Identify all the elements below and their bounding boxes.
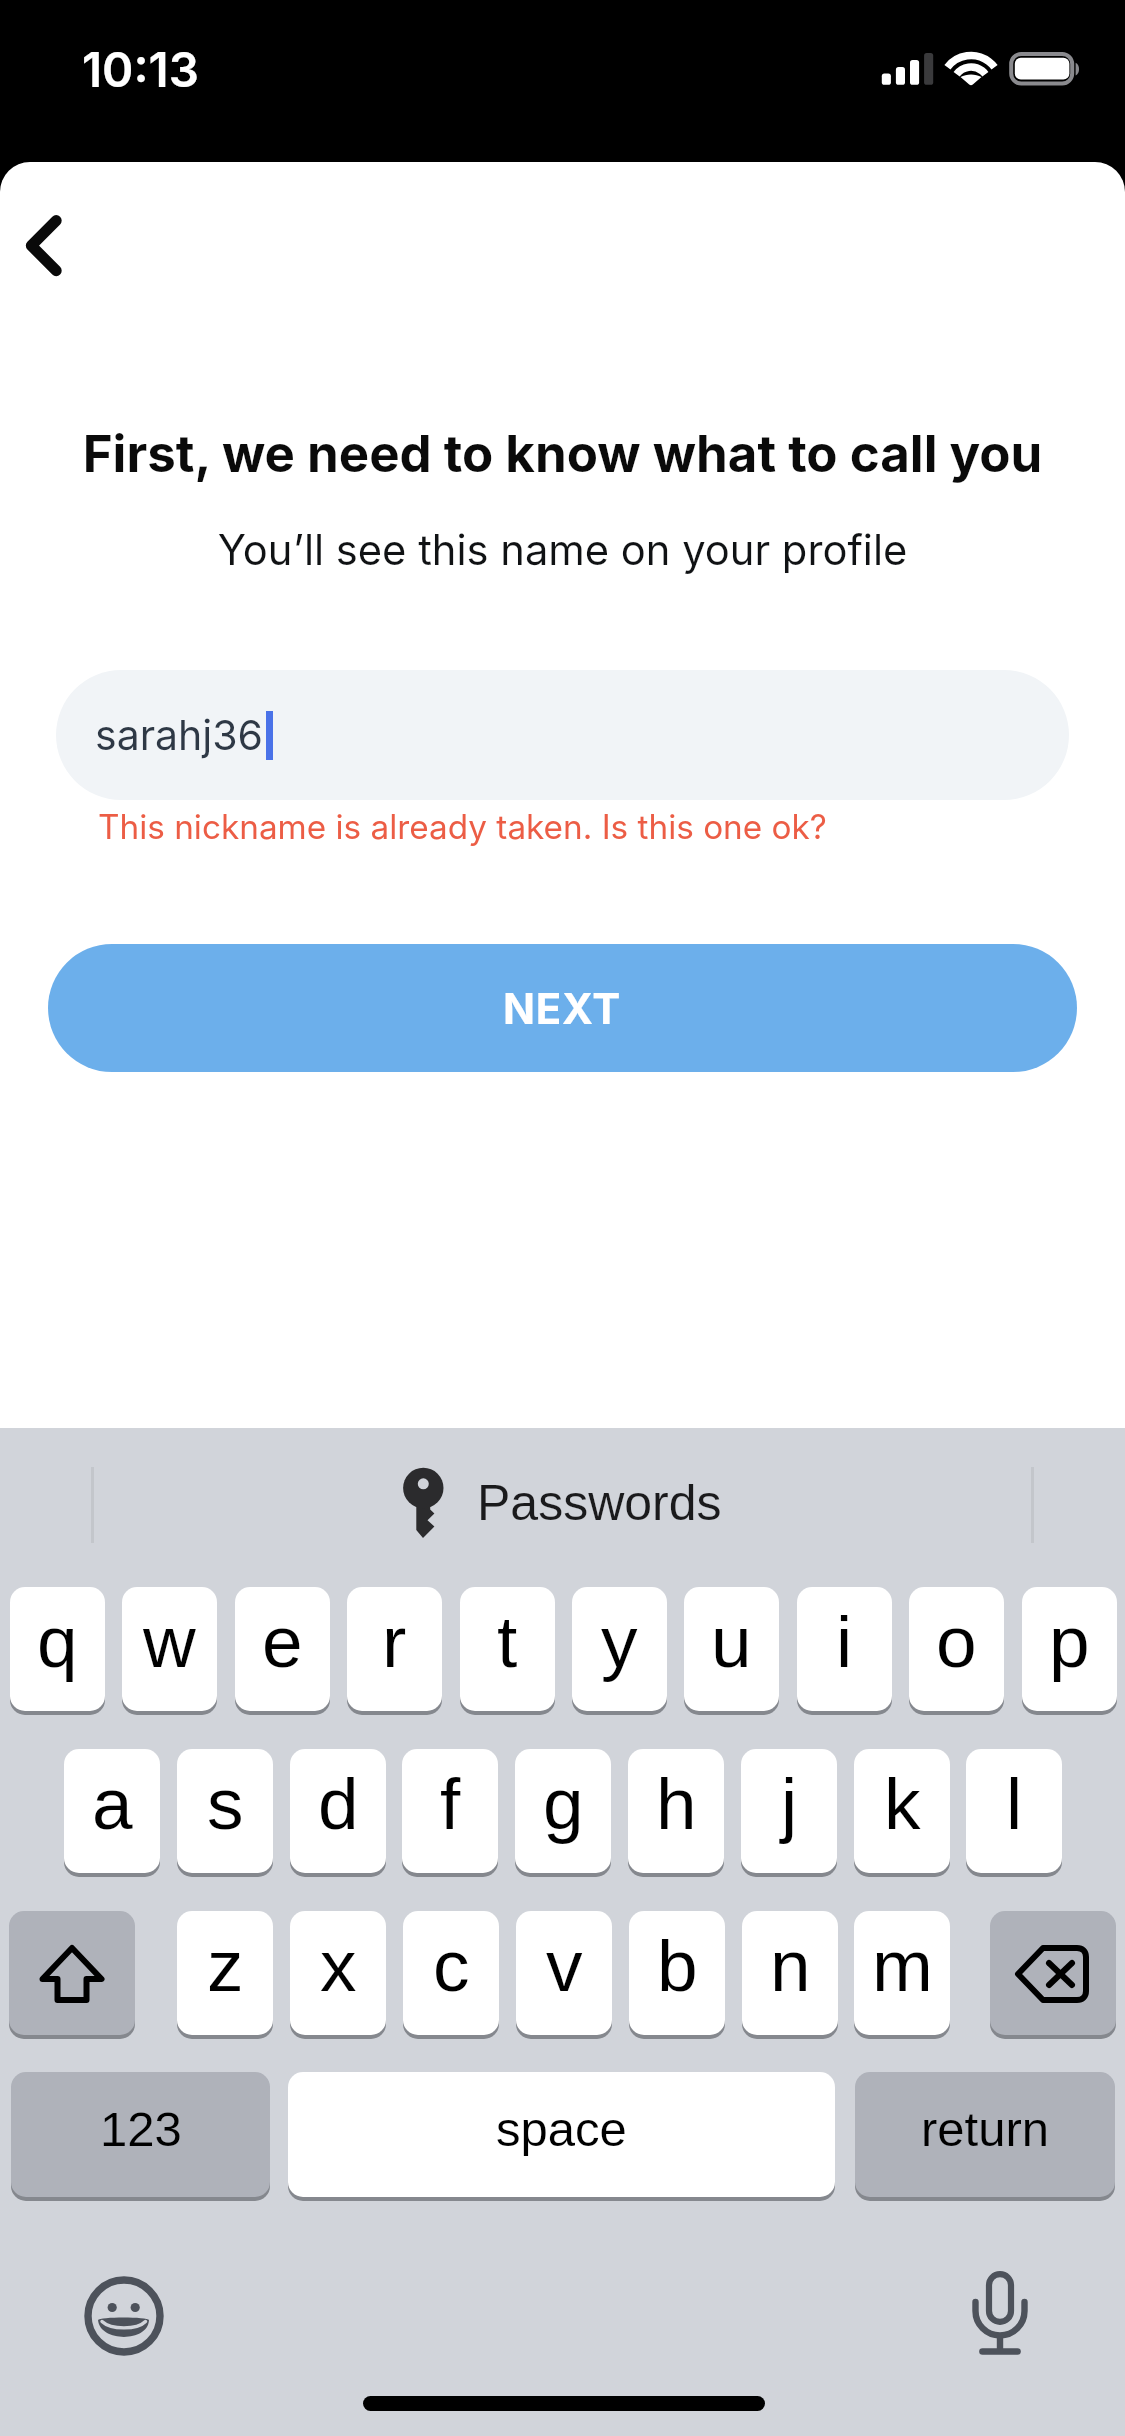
button[interactable]: e (235, 1587, 330, 1711)
button[interactable]: h (628, 1749, 724, 1873)
button[interactable]: c (403, 1911, 499, 2035)
staticText: r (382, 1601, 407, 1683)
button[interactable]: f (402, 1749, 498, 1873)
staticText: s (207, 1763, 244, 1845)
staticText: g (543, 1763, 584, 1845)
button[interactable]: b (629, 1911, 725, 2035)
staticText: b (657, 1925, 698, 2007)
staticText: j (781, 1763, 798, 1845)
staticText: sarahj36 (95, 710, 264, 760)
staticText: This nickname is already taken. Is this … (98, 807, 827, 847)
button[interactable]: w (122, 1587, 217, 1711)
staticText: NEXT (503, 983, 622, 1034)
button[interactable]: g (515, 1749, 611, 1873)
staticText: w (143, 1601, 196, 1683)
button[interactable]: m (854, 1911, 950, 2035)
button[interactable]: return (855, 2072, 1115, 2197)
staticText: 123 (100, 2102, 182, 2157)
button[interactable]: space (288, 2072, 835, 2197)
staticText: f (440, 1763, 461, 1845)
button[interactable]: Emoji keyboard (64, 2256, 184, 2376)
button[interactable]: k (854, 1749, 950, 1873)
staticText: a (92, 1763, 133, 1845)
staticText: space (496, 2102, 627, 2157)
staticText: h (656, 1763, 697, 1845)
staticText: z (207, 1925, 244, 2007)
button[interactable]: j (741, 1749, 837, 1873)
staticText: First, we need to know what to call you (0, 423, 1125, 485)
staticText: n (770, 1925, 811, 2007)
button[interactable]: n (742, 1911, 838, 2035)
button[interactable]: i (797, 1587, 892, 1711)
staticText: e (262, 1601, 303, 1683)
staticText: i (836, 1601, 853, 1683)
button[interactable]: Backspace (990, 1911, 1116, 2035)
staticText: y (601, 1601, 638, 1683)
staticText: o (936, 1601, 977, 1683)
button[interactable]: y (572, 1587, 667, 1711)
button[interactable]: sarahj36 (56, 670, 1069, 800)
button[interactable]: q (10, 1587, 105, 1711)
button[interactable]: NEXT (48, 944, 1077, 1072)
button[interactable]: z (177, 1911, 273, 2035)
button[interactable]: o (909, 1587, 1004, 1711)
staticText: d (318, 1763, 359, 1845)
staticText: c (433, 1925, 470, 2007)
staticText: You’ll see this name on your profile (0, 525, 1125, 575)
button[interactable]: x (290, 1911, 386, 2035)
button[interactable]: r (347, 1587, 442, 1711)
staticText: u (711, 1601, 752, 1683)
staticText: 10:13 (82, 41, 199, 98)
staticText: return (921, 2102, 1050, 2157)
staticText: Passwords (477, 1475, 722, 1531)
staticText: m (872, 1925, 933, 2007)
button[interactable]: Passwords (94, 1428, 1031, 1578)
staticText: t (497, 1601, 518, 1683)
button[interactable]: l (966, 1749, 1062, 1873)
staticText: l (1006, 1763, 1023, 1845)
button[interactable]: d (290, 1749, 386, 1873)
staticText: p (1049, 1601, 1090, 1683)
button[interactable]: u (684, 1587, 779, 1711)
staticText: v (546, 1925, 583, 2007)
button[interactable]: a (64, 1749, 160, 1873)
staticText: x (320, 1925, 357, 2007)
button[interactable]: Shift (9, 1911, 135, 2035)
staticText: k (884, 1763, 921, 1845)
button[interactable]: Back (0, 190, 112, 302)
button[interactable]: Dictation (940, 2253, 1060, 2373)
button[interactable]: p (1022, 1587, 1117, 1711)
button[interactable]: v (516, 1911, 612, 2035)
button[interactable]: t (460, 1587, 555, 1711)
button[interactable]: 123 (11, 2072, 270, 2197)
button[interactable]: s (177, 1749, 273, 1873)
staticText: q (37, 1601, 78, 1683)
